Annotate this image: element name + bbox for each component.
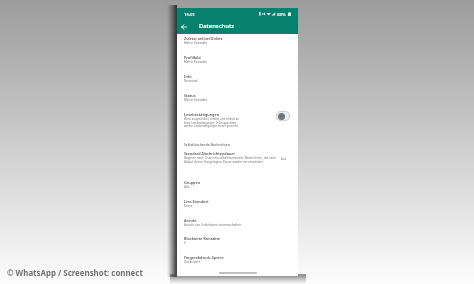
button[interactable]: Lesebestätigungen — [276, 111, 290, 121]
button[interactable]: Gruppen — [177, 176, 298, 195]
button[interactable]: Zuletzt online/Online — [177, 32, 298, 51]
staticText: Aus — [281, 157, 287, 161]
staticText: 15:01 — [184, 11, 195, 17]
button[interactable]: Profilbild — [177, 51, 298, 70]
button[interactable]: Lesebestätigungen — [177, 108, 298, 133]
staticText: Lesebestätigungen — [184, 112, 220, 117]
staticText: Meine Kontakte — [184, 60, 208, 64]
button[interactable]: Anrufe — [177, 214, 298, 233]
staticText: Niemand — [184, 79, 198, 83]
staticText: Fingerabdruck-Sperre — [184, 255, 224, 260]
staticText: 88% — [277, 11, 286, 17]
staticText: Live-Standort — [184, 199, 209, 204]
staticText: Beginne neue Chats mit selbstlöschenden … — [184, 156, 284, 164]
button[interactable]: Blockierte Kontakte — [177, 232, 298, 251]
staticText: Meine Kontakte — [184, 41, 208, 45]
staticText: Datenschutz — [199, 22, 234, 30]
staticText: Alle — [184, 185, 190, 189]
staticText: Profilbild — [184, 55, 201, 60]
staticText: Info — [184, 74, 192, 79]
button[interactable]: Standard-Nachrichtendauer — [177, 147, 298, 169]
button[interactable]: Fingerabdruck-Sperre — [177, 251, 298, 270]
button[interactable]: Back — [178, 21, 189, 32]
staticText: © WhatsApp / Screenshot: connect — [7, 268, 143, 279]
staticText: Anrufe von Unbekannt stummschalten — [184, 223, 242, 227]
staticText: Meine Kontakte — [184, 98, 208, 102]
staticText: Selbstlöschende Nachrichten — [184, 142, 230, 146]
staticText: 0 — [184, 241, 186, 245]
staticText: Zuletzt online/Online — [184, 36, 223, 41]
staticText: Status — [184, 93, 196, 98]
button[interactable]: Live-Standort — [177, 195, 298, 214]
button[interactable]: Info — [177, 70, 298, 89]
staticText: Gruppen — [184, 180, 201, 185]
staticText: Deaktiviert — [184, 260, 201, 264]
staticText: Anrufe — [184, 218, 197, 223]
button[interactable]: Status — [177, 89, 298, 108]
staticText: Wenn ausgeschaltet, sendest und erhältst… — [184, 117, 240, 128]
staticText: Blockierte Kontakte — [184, 236, 221, 241]
staticText: Keine — [184, 204, 193, 208]
staticText: Standard-Nachrichtendauer — [184, 151, 236, 156]
